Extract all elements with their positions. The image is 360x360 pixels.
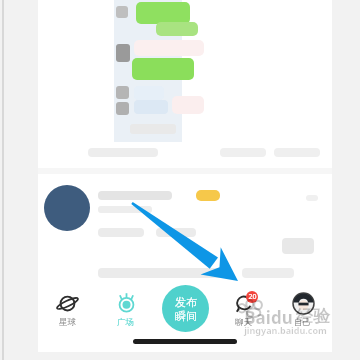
button[interactable]: 星球	[38, 288, 96, 328]
other: 聊天	[233, 292, 255, 314]
button[interactable]: 广场	[96, 288, 155, 328]
staticText: Baidu	[244, 306, 293, 329]
staticText: 聊天	[235, 317, 252, 328]
button[interactable]: 发布	[162, 285, 209, 332]
other: 星球	[57, 293, 78, 314]
other: 自己	[293, 293, 314, 314]
staticText: 20	[248, 292, 257, 302]
button[interactable]: 自己	[273, 288, 332, 328]
button[interactable]: 聊天	[214, 288, 273, 328]
staticText: 经验	[296, 306, 330, 327]
staticText: jingyan.baidu.com	[244, 324, 327, 336]
staticText: 自己	[294, 317, 311, 328]
other: 广场	[116, 293, 137, 314]
staticText: 瞬间	[175, 309, 197, 323]
staticText: 广场	[117, 317, 134, 328]
staticText: 发布	[175, 295, 197, 309]
staticText: 星球	[59, 317, 76, 328]
